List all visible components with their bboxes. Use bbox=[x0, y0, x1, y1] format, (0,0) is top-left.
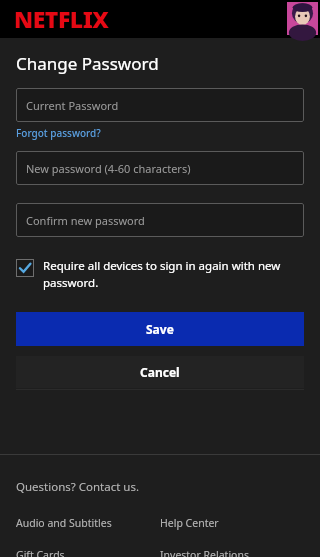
button[interactable]: Questions? Contact us. bbox=[16, 479, 140, 495]
button[interactable]: Current Password bbox=[16, 88, 304, 122]
button[interactable]: New password (4-60 characters) bbox=[16, 151, 304, 185]
button[interactable]: Help Center bbox=[160, 516, 219, 530]
button[interactable]: Save bbox=[16, 312, 304, 346]
button[interactable]: Gift Cards bbox=[16, 548, 65, 557]
staticText: Change Password bbox=[16, 52, 159, 75]
button[interactable]: Forgot password? bbox=[16, 126, 101, 140]
staticText: Cancel bbox=[140, 364, 180, 380]
button[interactable]: Require all devices to sign in again wit… bbox=[16, 258, 304, 290]
button[interactable]: Investor Relations bbox=[160, 548, 249, 557]
button[interactable]: Cancel bbox=[16, 356, 304, 388]
button[interactable]: Profile bbox=[287, 2, 318, 35]
staticText: Confirm new password bbox=[26, 213, 145, 228]
staticText: Require all devices to sign in again wit… bbox=[43, 258, 304, 290]
staticText: Current Password bbox=[26, 98, 119, 113]
staticText: Save bbox=[146, 321, 174, 337]
button[interactable]: Confirm new password bbox=[16, 203, 304, 237]
staticText: New password (4-60 characters) bbox=[26, 161, 191, 176]
button[interactable]: Audio and Subtitles bbox=[16, 516, 112, 530]
button[interactable]: NETFLIX bbox=[14, 3, 109, 34]
